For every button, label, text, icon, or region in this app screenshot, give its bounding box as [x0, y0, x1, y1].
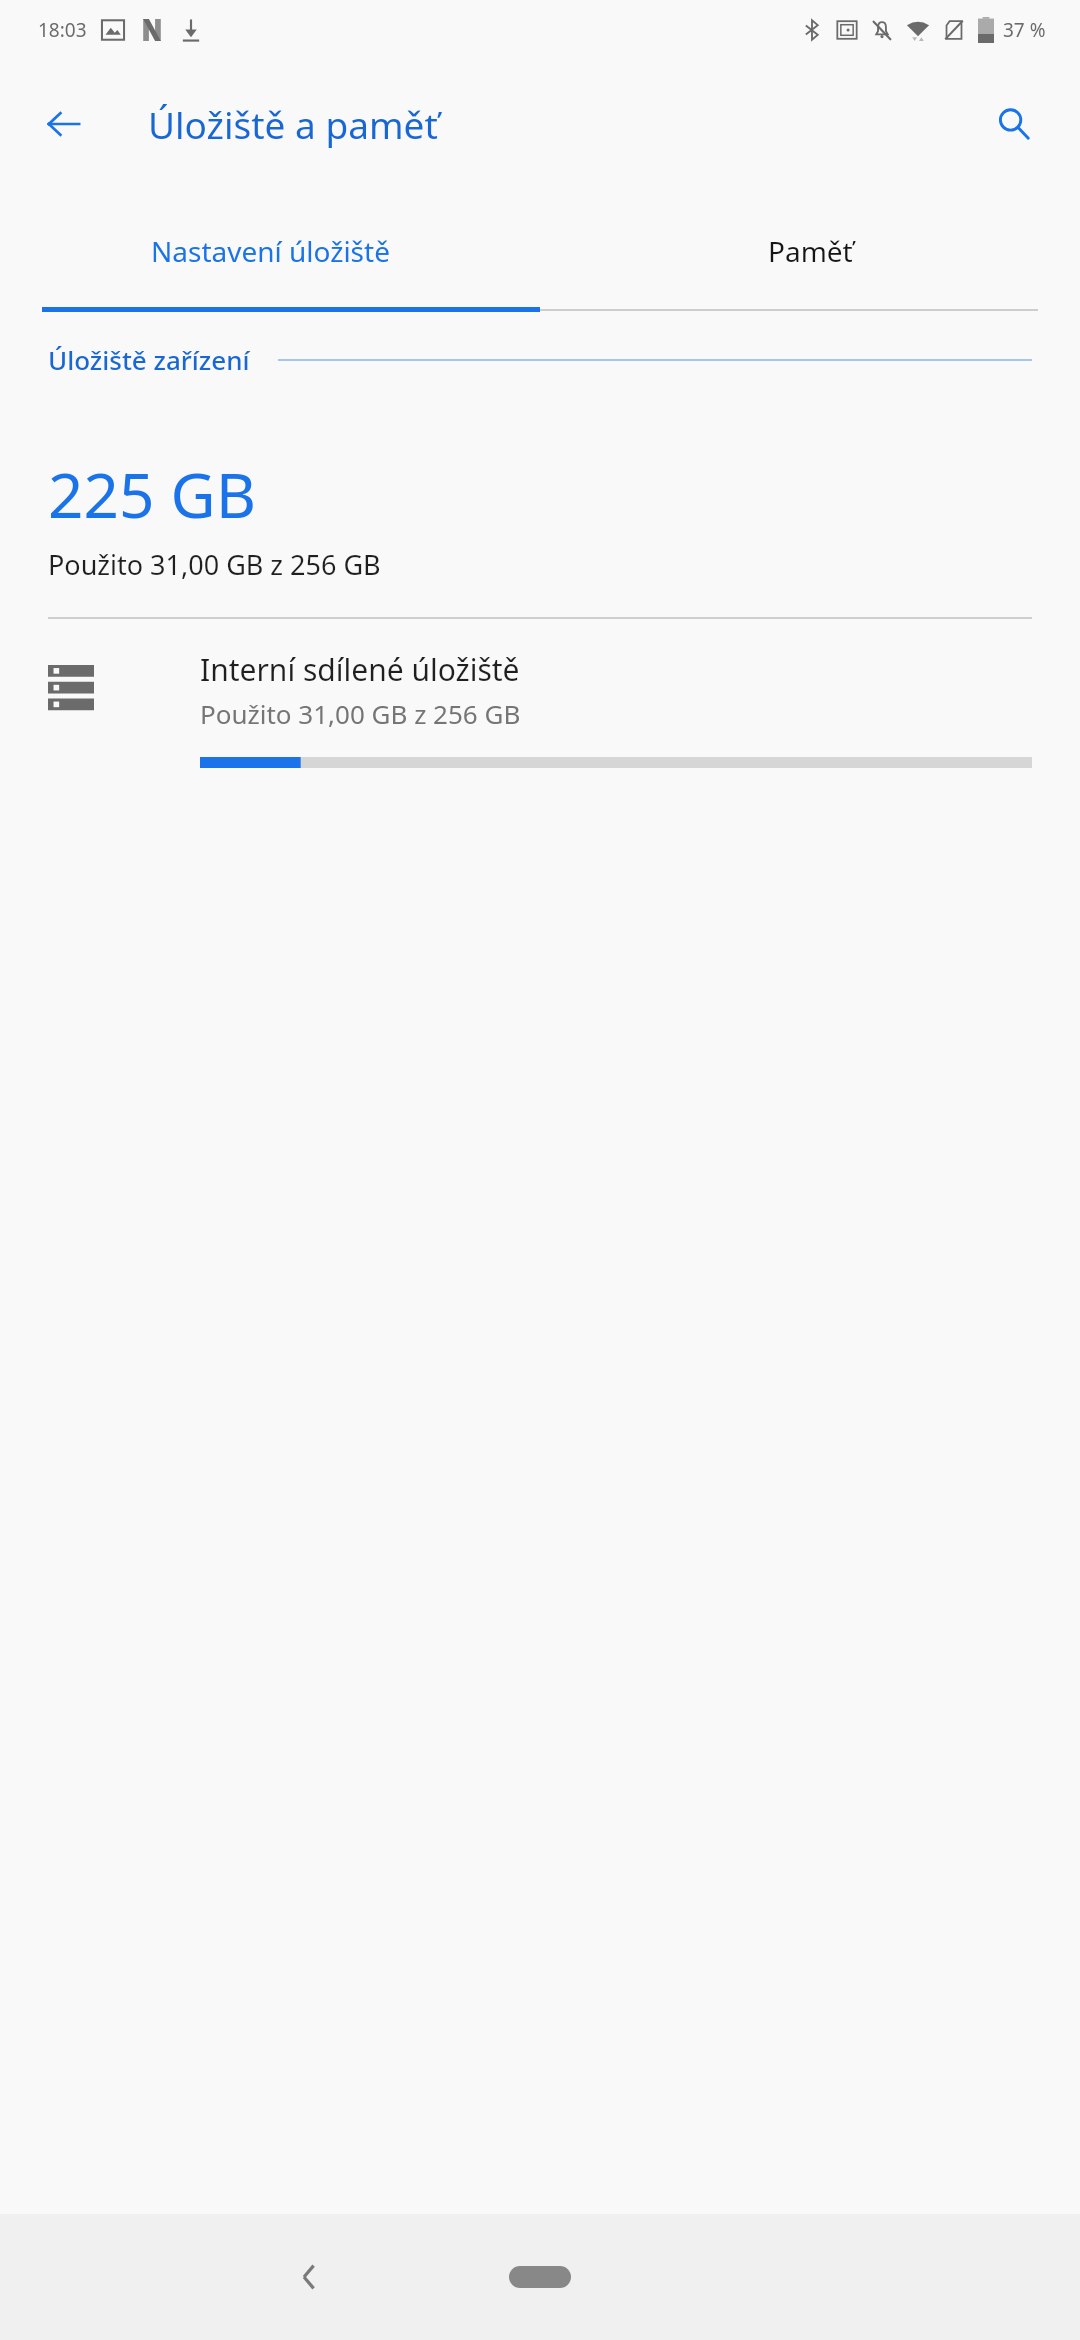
staticText: 225 GB	[48, 452, 256, 536]
staticText: Úložiště a paměť	[148, 99, 438, 149]
button[interactable]: Nastavení úložiště	[0, 188, 540, 314]
staticText: 37 %	[1003, 17, 1046, 43]
staticText: Nastavení úložiště	[151, 232, 390, 270]
staticText: Interní sdílené úložiště	[200, 649, 520, 690]
button[interactable]: Interní sdílené úložiště	[0, 619, 1080, 786]
button[interactable]: Hledat	[978, 88, 1050, 160]
button[interactable]: Zpět	[270, 2237, 350, 2317]
button[interactable]: Zpět	[28, 88, 100, 160]
staticText: Použito 31,00 GB z 256 GB	[200, 696, 521, 731]
staticText: Použito 31,00 GB z 256 GB	[48, 546, 381, 583]
staticText: Paměť	[768, 232, 853, 270]
staticText: 18:03	[38, 17, 87, 43]
button[interactable]: Domů	[480, 2247, 600, 2307]
button[interactable]: Paměť	[540, 188, 1080, 314]
staticText: Úložiště zařízení	[48, 342, 250, 377]
